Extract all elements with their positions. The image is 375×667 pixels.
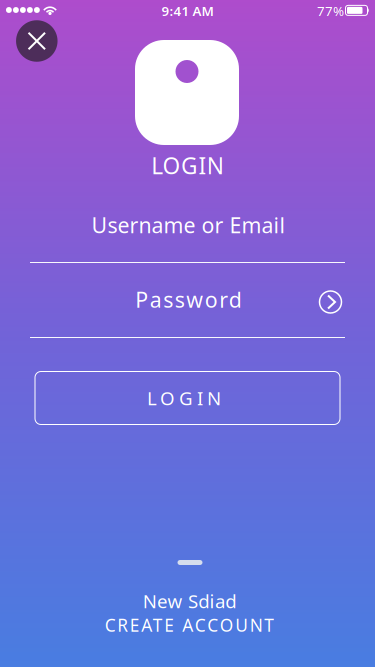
button[interactable]: CREATE ACCOUNT xyxy=(74,613,304,637)
staticText: CREATE ACCOUNT xyxy=(105,613,274,636)
button[interactable]: LOGIN xyxy=(35,371,340,424)
button[interactable]: Username or Email xyxy=(30,212,345,263)
staticText: Username or Email xyxy=(91,211,285,239)
button[interactable]: Show password xyxy=(316,288,344,316)
staticText: 9:41 AM xyxy=(161,2,213,20)
staticText: Password xyxy=(135,285,242,314)
button[interactable]: Close xyxy=(15,19,59,63)
staticText: 77% xyxy=(317,2,344,20)
staticText: New Sdiad xyxy=(143,589,236,613)
button[interactable]: Password xyxy=(30,287,345,338)
staticText: LOGIN xyxy=(147,386,221,410)
staticText: LOGIN xyxy=(151,150,224,180)
